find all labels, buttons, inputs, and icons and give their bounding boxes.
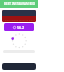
button[interactable]: BEST INSTAGRAM BIO: [0, 0, 38, 8]
staticText: 56.2: [17, 25, 25, 30]
button[interactable]: 56.2: [4, 23, 34, 31]
staticText: Lorem ipsum dolor sit amet consect: [2, 18, 36, 21]
button[interactable]: Navigation bar: [2, 63, 36, 70]
staticText: BEST INSTAGRAM BIO: [4, 2, 35, 6]
button[interactable]: Lorem ipsum dolor sit amet consect: [2, 10, 36, 22]
